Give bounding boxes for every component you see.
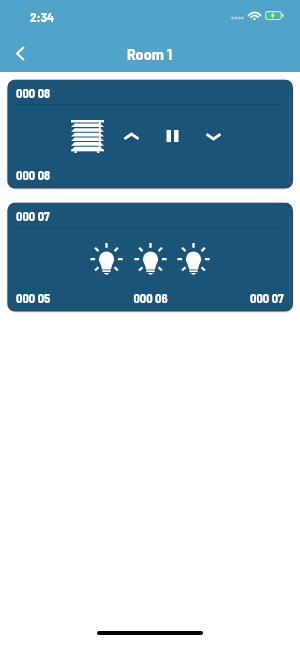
staticText: 000 06 [51,290,250,305]
staticText: 000 08 [16,167,51,182]
button[interactable]: Light [129,238,171,282]
button[interactable]: 000 07 [8,203,292,310]
button[interactable]: 000 08 [8,80,292,187]
staticText: 000 05 [16,290,51,305]
button[interactable]: Light [172,238,214,282]
button[interactable]: Light [85,238,127,282]
button[interactable]: Open blinds [111,114,151,158]
button[interactable]: Close blinds [193,114,233,158]
button[interactable]: Stop blinds [152,114,192,158]
staticText: Room 1 [127,44,173,63]
staticText: 2:34 [30,9,55,25]
button[interactable]: Back [0,34,40,72]
staticText: 000 08 [16,85,51,100]
staticText: 000 07 [16,208,50,223]
button[interactable]: Blinds [66,114,108,158]
staticText: 000 07 [250,290,284,305]
